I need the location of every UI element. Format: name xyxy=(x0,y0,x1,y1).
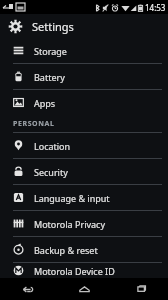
staticText: Apps xyxy=(34,97,56,109)
staticText: Location xyxy=(34,140,71,152)
staticText: Motorola Device ID xyxy=(34,265,115,277)
staticText: Settings xyxy=(32,19,74,34)
button[interactable]: Motorola Device ID xyxy=(0,263,168,278)
button[interactable]: Settings xyxy=(0,14,168,38)
button[interactable]: Back xyxy=(0,278,56,300)
button[interactable]: Location xyxy=(0,133,168,158)
button[interactable]: Language & input xyxy=(0,185,168,210)
button[interactable]: Apps xyxy=(0,90,168,115)
staticText: PERSONAL xyxy=(13,119,55,129)
staticText: Backup & reset xyxy=(34,244,98,256)
button[interactable]: Backup & reset xyxy=(0,237,168,262)
button[interactable]: Storage xyxy=(0,38,168,63)
staticText: Motorola Privacy xyxy=(34,218,106,230)
button[interactable]: Home xyxy=(56,278,112,300)
button[interactable]: Motorola Privacy xyxy=(0,211,168,236)
staticText: Storage xyxy=(34,45,67,57)
staticText: Battery xyxy=(34,71,65,83)
staticText: 14:53 xyxy=(145,2,166,13)
staticText: Security xyxy=(34,166,68,178)
staticText: Language & input xyxy=(34,192,110,204)
button[interactable]: Security xyxy=(0,159,168,184)
button[interactable]: Recent apps xyxy=(112,278,168,300)
button[interactable]: Battery xyxy=(0,64,168,89)
